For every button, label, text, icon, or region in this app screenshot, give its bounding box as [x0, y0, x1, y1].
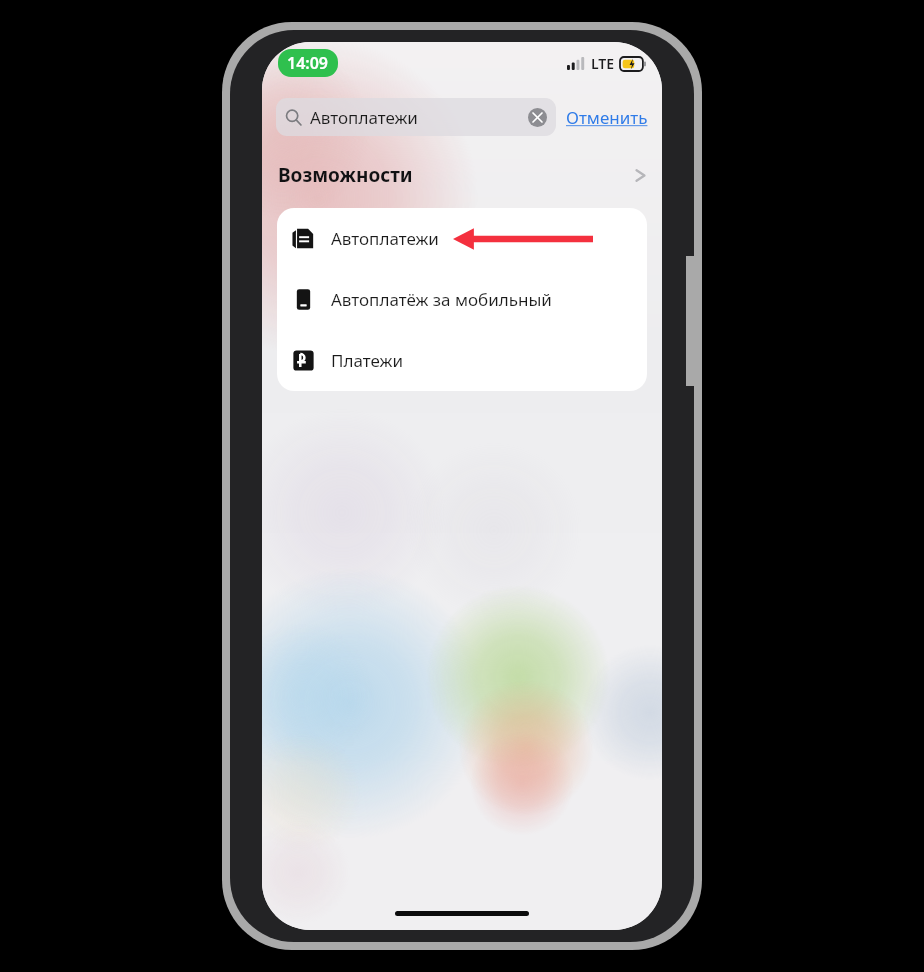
button[interactable]: Clear search [528, 108, 547, 127]
staticText: Возможности [278, 162, 413, 188]
staticText: Автоплатёж за мобильный [331, 288, 552, 311]
button[interactable]: Платежи [277, 330, 647, 391]
staticText: LTE [591, 54, 615, 73]
staticText: 14:09 [287, 52, 329, 74]
button[interactable]: Автоплатежи [276, 98, 556, 136]
button[interactable]: Автоплатёж за мобильный [277, 269, 647, 330]
staticText: Отменить [566, 106, 648, 129]
button[interactable]: Возможности [262, 158, 662, 192]
button[interactable]: Отменить [566, 102, 648, 133]
button[interactable]: Автоплатежи [277, 208, 647, 269]
staticText: Платежи [331, 349, 403, 372]
staticText: Автоплатежи [331, 227, 439, 250]
staticText: Автоплатежи [310, 106, 418, 129]
